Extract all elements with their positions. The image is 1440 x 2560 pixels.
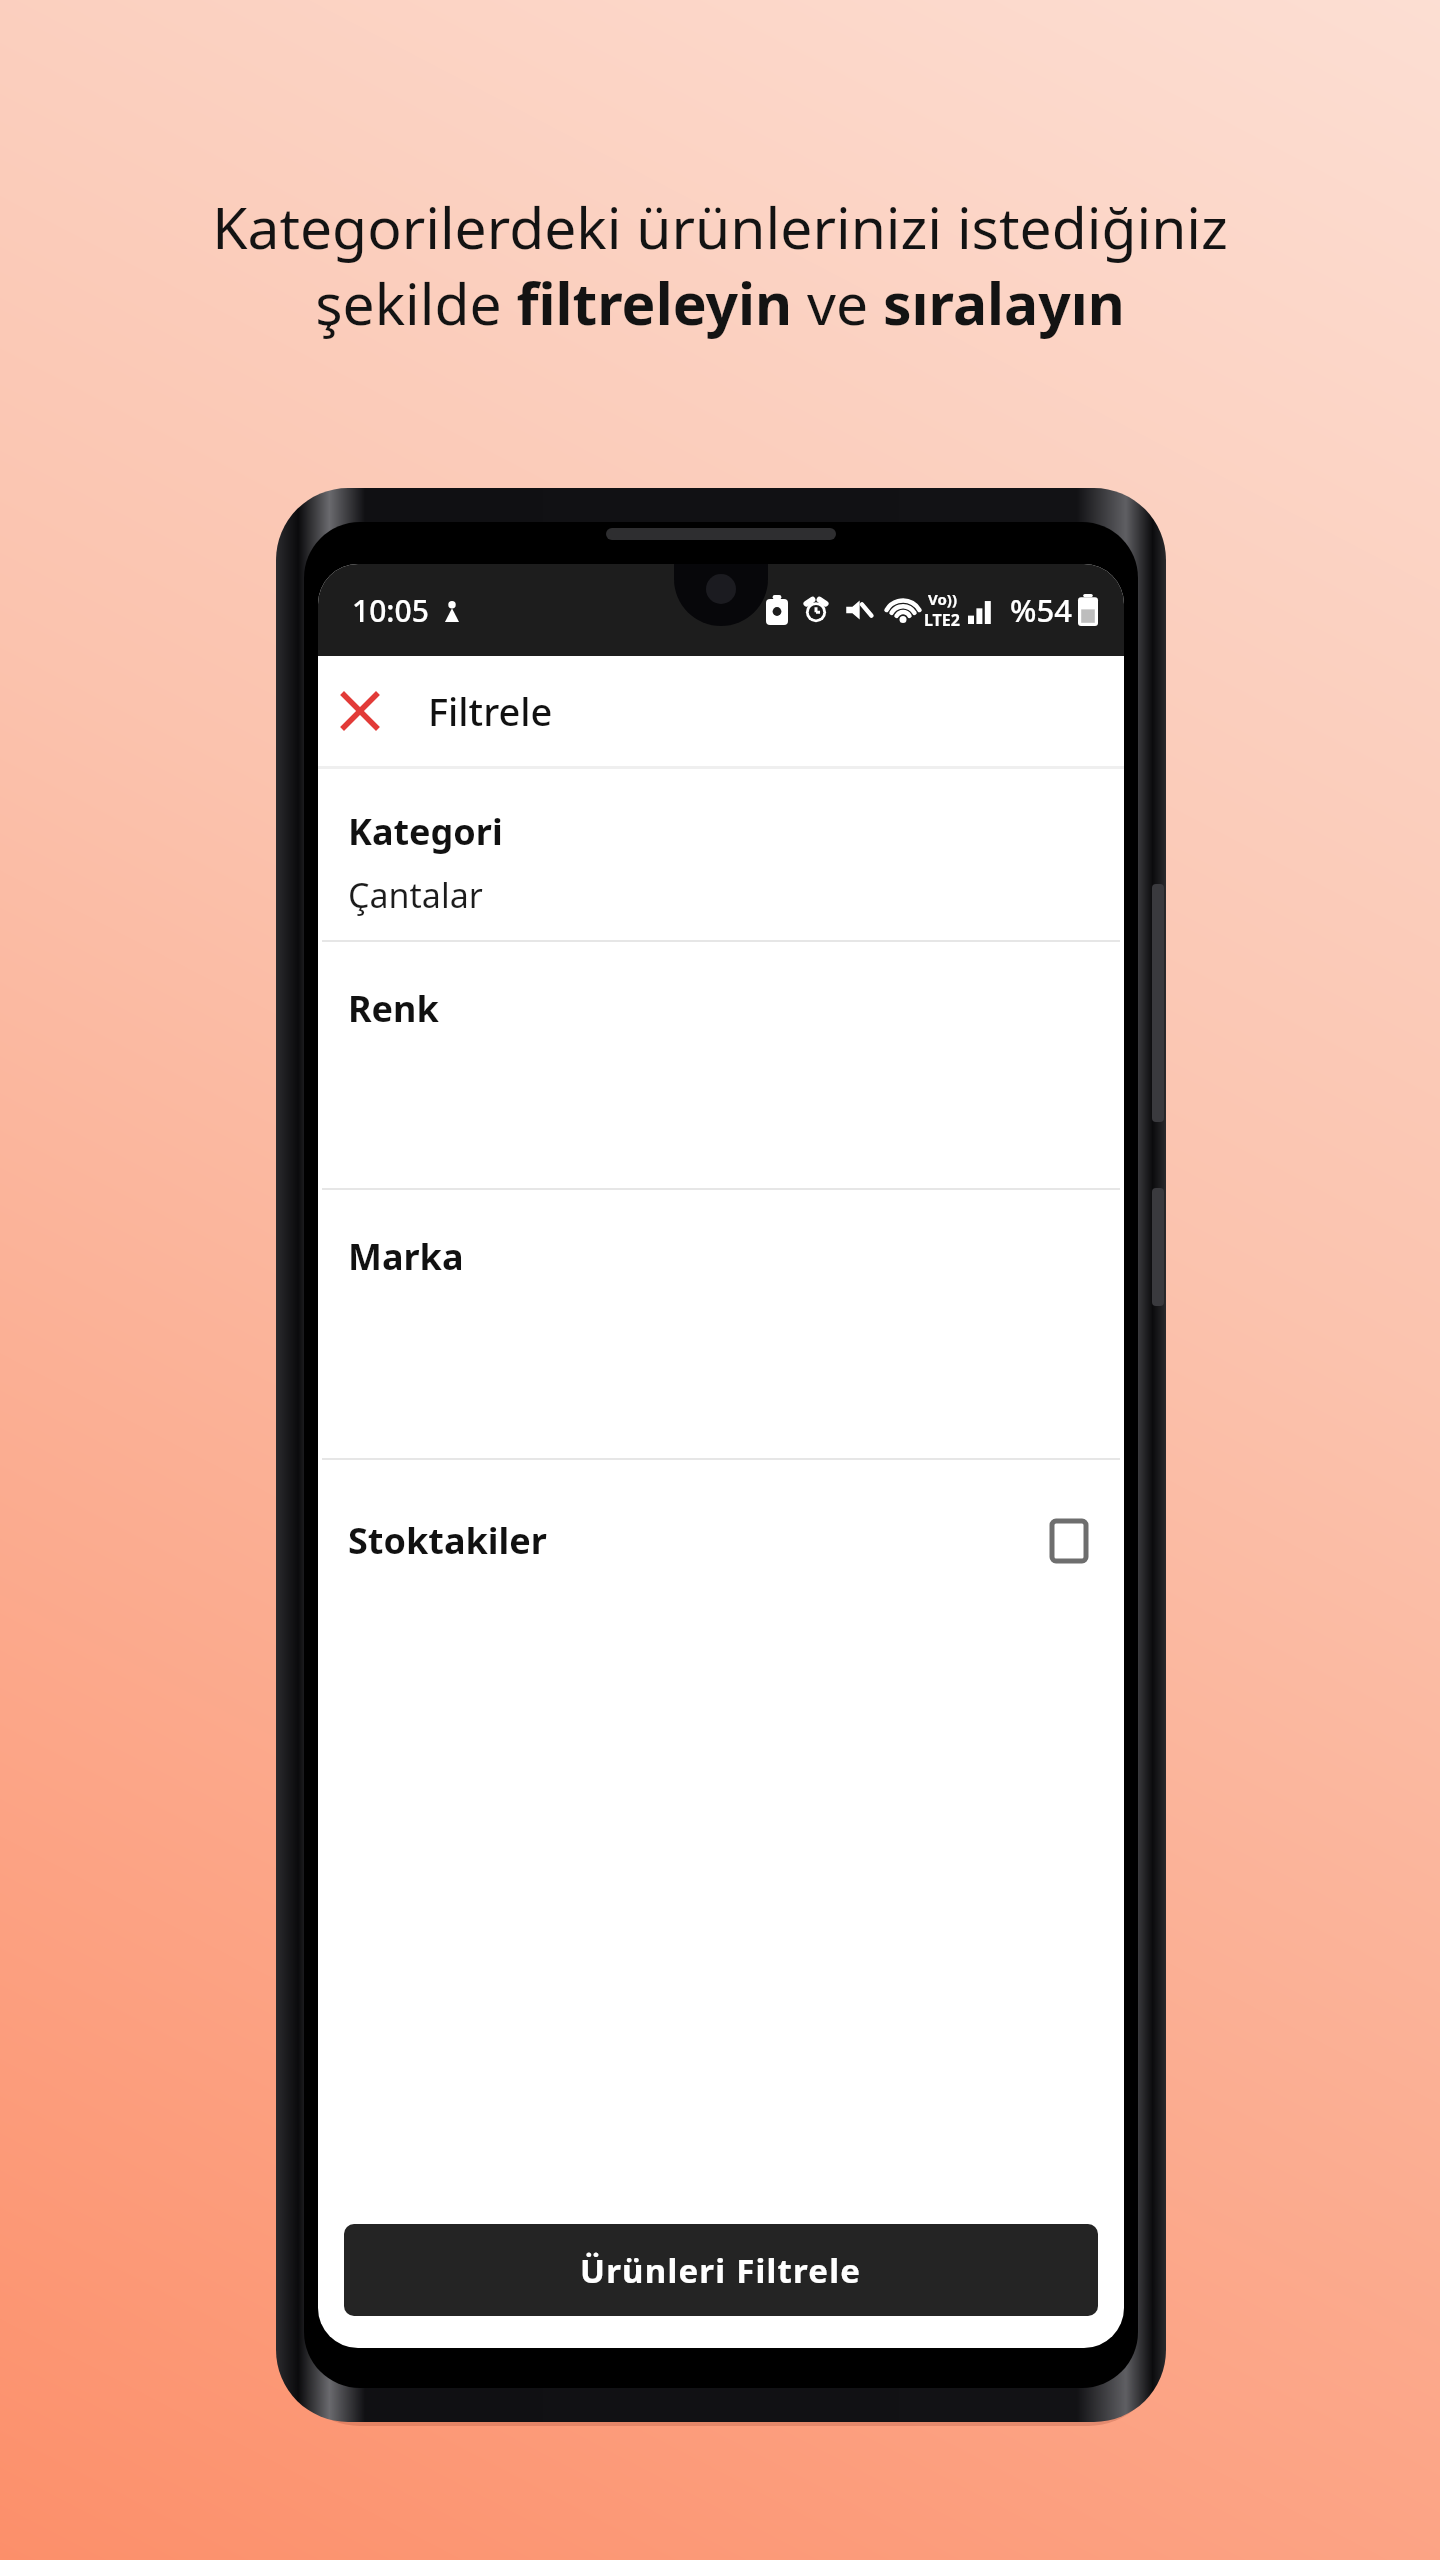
staticText: 10:05	[352, 590, 429, 631]
button[interactable]: Kapat	[318, 669, 402, 753]
button[interactable]: Kategori	[318, 769, 1124, 940]
button[interactable]: Ürünleri Filtrele	[344, 2224, 1098, 2316]
staticText: Çantalar	[348, 872, 483, 918]
staticText: Ürünleri Filtrele	[580, 2248, 862, 2293]
staticText: Kategori	[348, 807, 503, 856]
staticText: LTE2	[924, 609, 960, 631]
staticText: Marka	[348, 1232, 464, 1281]
button[interactable]: Renk	[318, 942, 1124, 1188]
button[interactable]: Marka	[318, 1190, 1124, 1458]
staticText: Renk	[348, 984, 439, 1033]
staticText: Filtrele	[428, 685, 553, 737]
staticText: %54	[1010, 589, 1072, 631]
staticText: Stoktakiler	[348, 1516, 547, 1565]
staticText: Vo))	[928, 589, 957, 609]
button[interactable]: Stoktakiler	[318, 1460, 1124, 1615]
staticText: Kategorilerdeki ürünlerinizi istediğiniz…	[60, 188, 1380, 341]
